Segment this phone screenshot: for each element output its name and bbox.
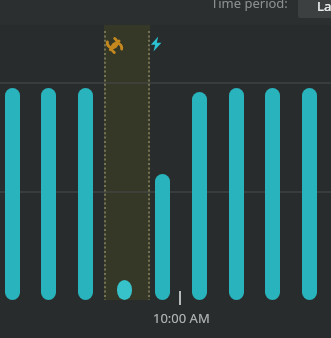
button[interactable]: Last [298,0,331,18]
staticText: Time period: [211,0,288,12]
staticText: 10:00 AM [153,309,210,327]
button[interactable]: Eco event marker [105,36,124,55]
button[interactable]: Power event marker [148,36,164,52]
staticText: Last [317,0,331,15]
